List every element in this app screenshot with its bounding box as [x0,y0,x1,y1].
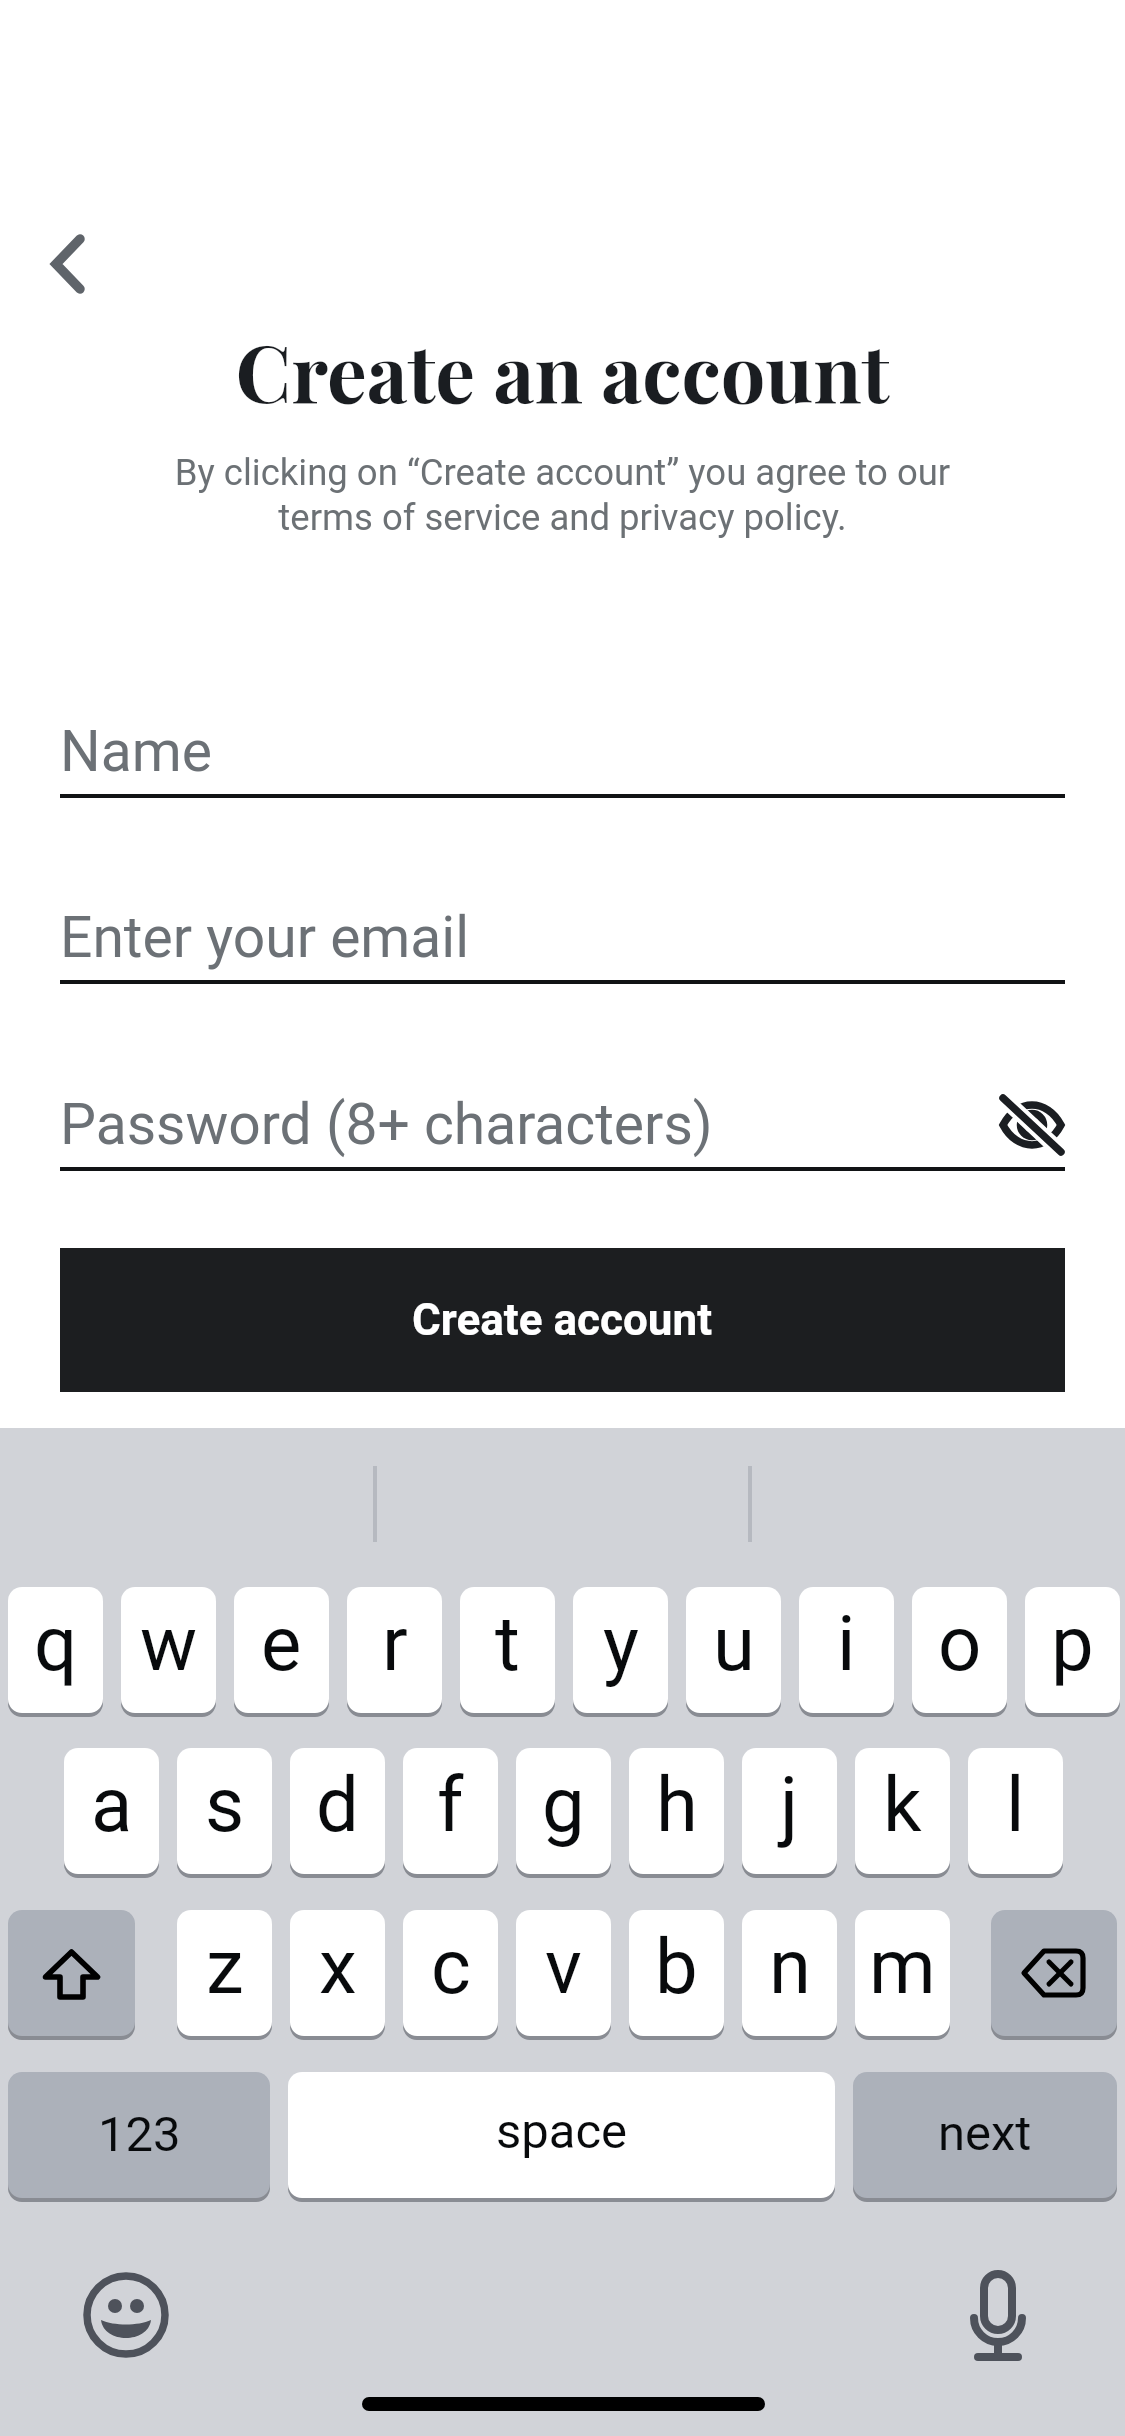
button[interactable]: Enter your email [60,880,1065,984]
button[interactable]: a [64,1748,159,1874]
staticText: next [938,2105,1032,2162]
button[interactable]: j [742,1748,837,1874]
button[interactable]: x [290,1910,385,2036]
staticText: Create account [412,1294,713,1346]
button[interactable]: b [629,1910,724,2036]
staticText: g [542,1760,585,1849]
staticText: y [603,1599,639,1688]
staticText: w [140,1599,198,1688]
staticText: n [769,1922,811,2011]
staticText: d [316,1760,359,1849]
staticText: Password (8+ characters) [60,1091,713,1158]
staticText: r [382,1599,408,1688]
button[interactable]: Show password [988,1081,1076,1169]
staticText: j [780,1760,799,1849]
staticText: q [34,1599,78,1688]
staticText: z [206,1922,244,2011]
button[interactable]: y [573,1587,668,1713]
staticText: i [837,1599,856,1688]
button[interactable]: k [855,1748,950,1874]
button[interactable]: Shift [8,1910,135,2036]
button[interactable]: Back [20,205,116,301]
button[interactable]: p [1025,1587,1120,1713]
staticText: x [319,1922,357,2011]
staticText: b [655,1922,698,2011]
staticText: u [713,1599,755,1688]
staticText: l [1006,1760,1025,1849]
staticText: Name [60,718,212,785]
button[interactable]: z [177,1910,272,2036]
staticText: k [883,1760,922,1849]
button[interactable]: 123 [8,2072,270,2198]
button[interactable]: e [234,1587,329,1713]
staticText: 123 [98,2106,181,2163]
staticText: p [1051,1599,1094,1688]
button[interactable]: Create account [60,1248,1065,1392]
staticText: By clicking on “Create account” you agre… [0,451,1125,539]
button[interactable]: o [912,1587,1007,1713]
staticText: h [656,1760,698,1849]
button[interactable]: next [853,2072,1117,2198]
staticText: Enter your email [60,904,470,971]
button[interactable]: v [516,1910,611,2036]
staticText: t [495,1599,520,1688]
staticText: m [869,1922,936,2011]
button[interactable]: s [177,1748,272,1874]
staticText: a [91,1760,133,1849]
button[interactable]: t [460,1587,555,1713]
button[interactable]: Voice input [952,2254,1044,2346]
button[interactable]: g [516,1748,611,1874]
button[interactable]: Name [60,694,1065,798]
staticText: e [261,1599,302,1688]
button[interactable]: i [799,1587,894,1713]
button[interactable]: h [629,1748,724,1874]
button[interactable]: m [855,1910,950,2036]
button[interactable]: Emoji [80,2269,172,2361]
staticText: s [205,1760,245,1849]
button[interactable]: q [8,1587,103,1713]
button[interactable]: c [403,1910,498,2036]
button[interactable]: w [121,1587,216,1713]
button[interactable]: f [403,1748,498,1874]
button[interactable]: d [290,1748,385,1874]
staticText: Create an account [0,318,1125,423]
button[interactable]: space [288,2072,835,2198]
button[interactable]: u [686,1587,781,1713]
staticText: v [545,1922,582,2011]
button[interactable]: n [742,1910,837,2036]
staticText: c [431,1922,471,2011]
button[interactable]: Password (8+ characters) [60,1067,1065,1171]
button[interactable]: l [968,1748,1063,1874]
button[interactable]: r [347,1587,442,1713]
staticText: f [437,1760,464,1849]
staticText: space [496,2103,628,2160]
button[interactable]: Backspace [991,1910,1117,2036]
staticText: o [938,1599,982,1688]
